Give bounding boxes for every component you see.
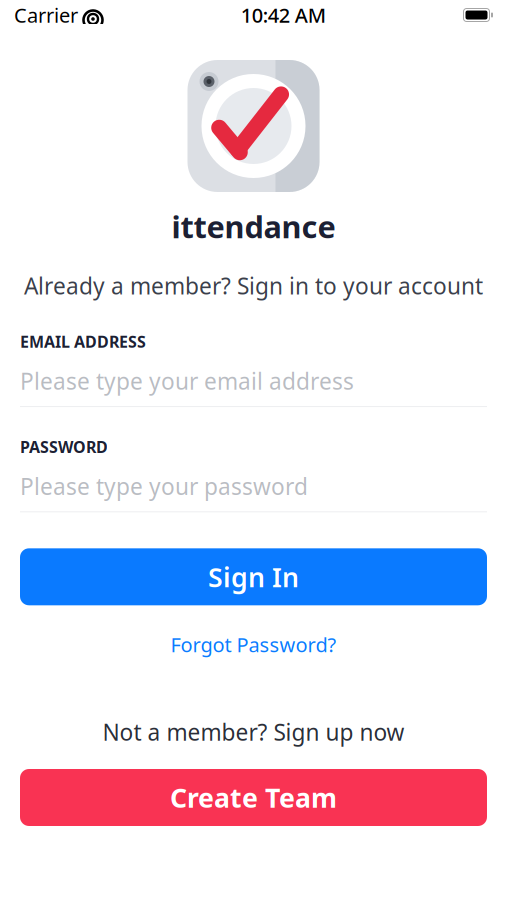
staticText: Carrier [14,2,78,28]
staticText: 10:42 AM [241,2,326,28]
staticText: EMAIL ADDRESS [20,331,146,352]
staticText: Not a member? Sign up now [102,717,404,747]
staticText: Please type your email address [20,366,354,396]
button[interactable]: Sign In [20,548,487,605]
button[interactable]: Please type your email address [20,368,487,394]
button[interactable]: Create Team [20,769,487,826]
button[interactable]: Please type your password [20,473,487,499]
button[interactable]: Not a member? Sign up now [92,713,414,751]
staticText: Sign In [208,559,299,594]
staticText: Forgot Password? [170,631,336,658]
staticText: PASSWORD [20,436,108,457]
staticText: Already a member? Sign in to your accoun… [24,271,483,301]
button[interactable]: Forgot Password? [160,627,346,662]
staticText: ittendance [171,206,335,247]
staticText: Please type your password [20,471,308,501]
staticText: Create Team [170,780,337,815]
